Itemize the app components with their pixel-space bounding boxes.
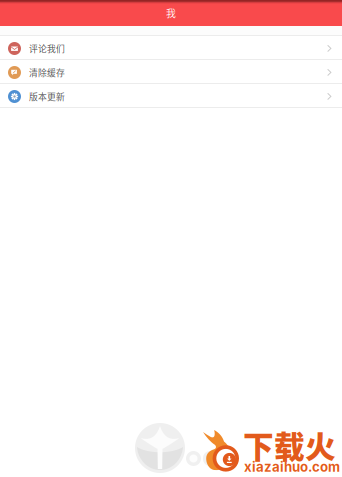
- button[interactable]: 版本更新: [0, 84, 342, 108]
- staticText: 下载火: [243, 423, 336, 467]
- staticText: 清除缓存: [29, 66, 65, 79]
- staticText: xiazaihuo.com: [244, 459, 340, 475]
- staticText: 版本更新: [29, 90, 65, 103]
- button[interactable]: 评论我们: [0, 36, 342, 60]
- button[interactable]: 清除缓存: [0, 60, 342, 84]
- staticText: 评论我们: [29, 42, 65, 55]
- staticText: 我: [166, 6, 176, 20]
